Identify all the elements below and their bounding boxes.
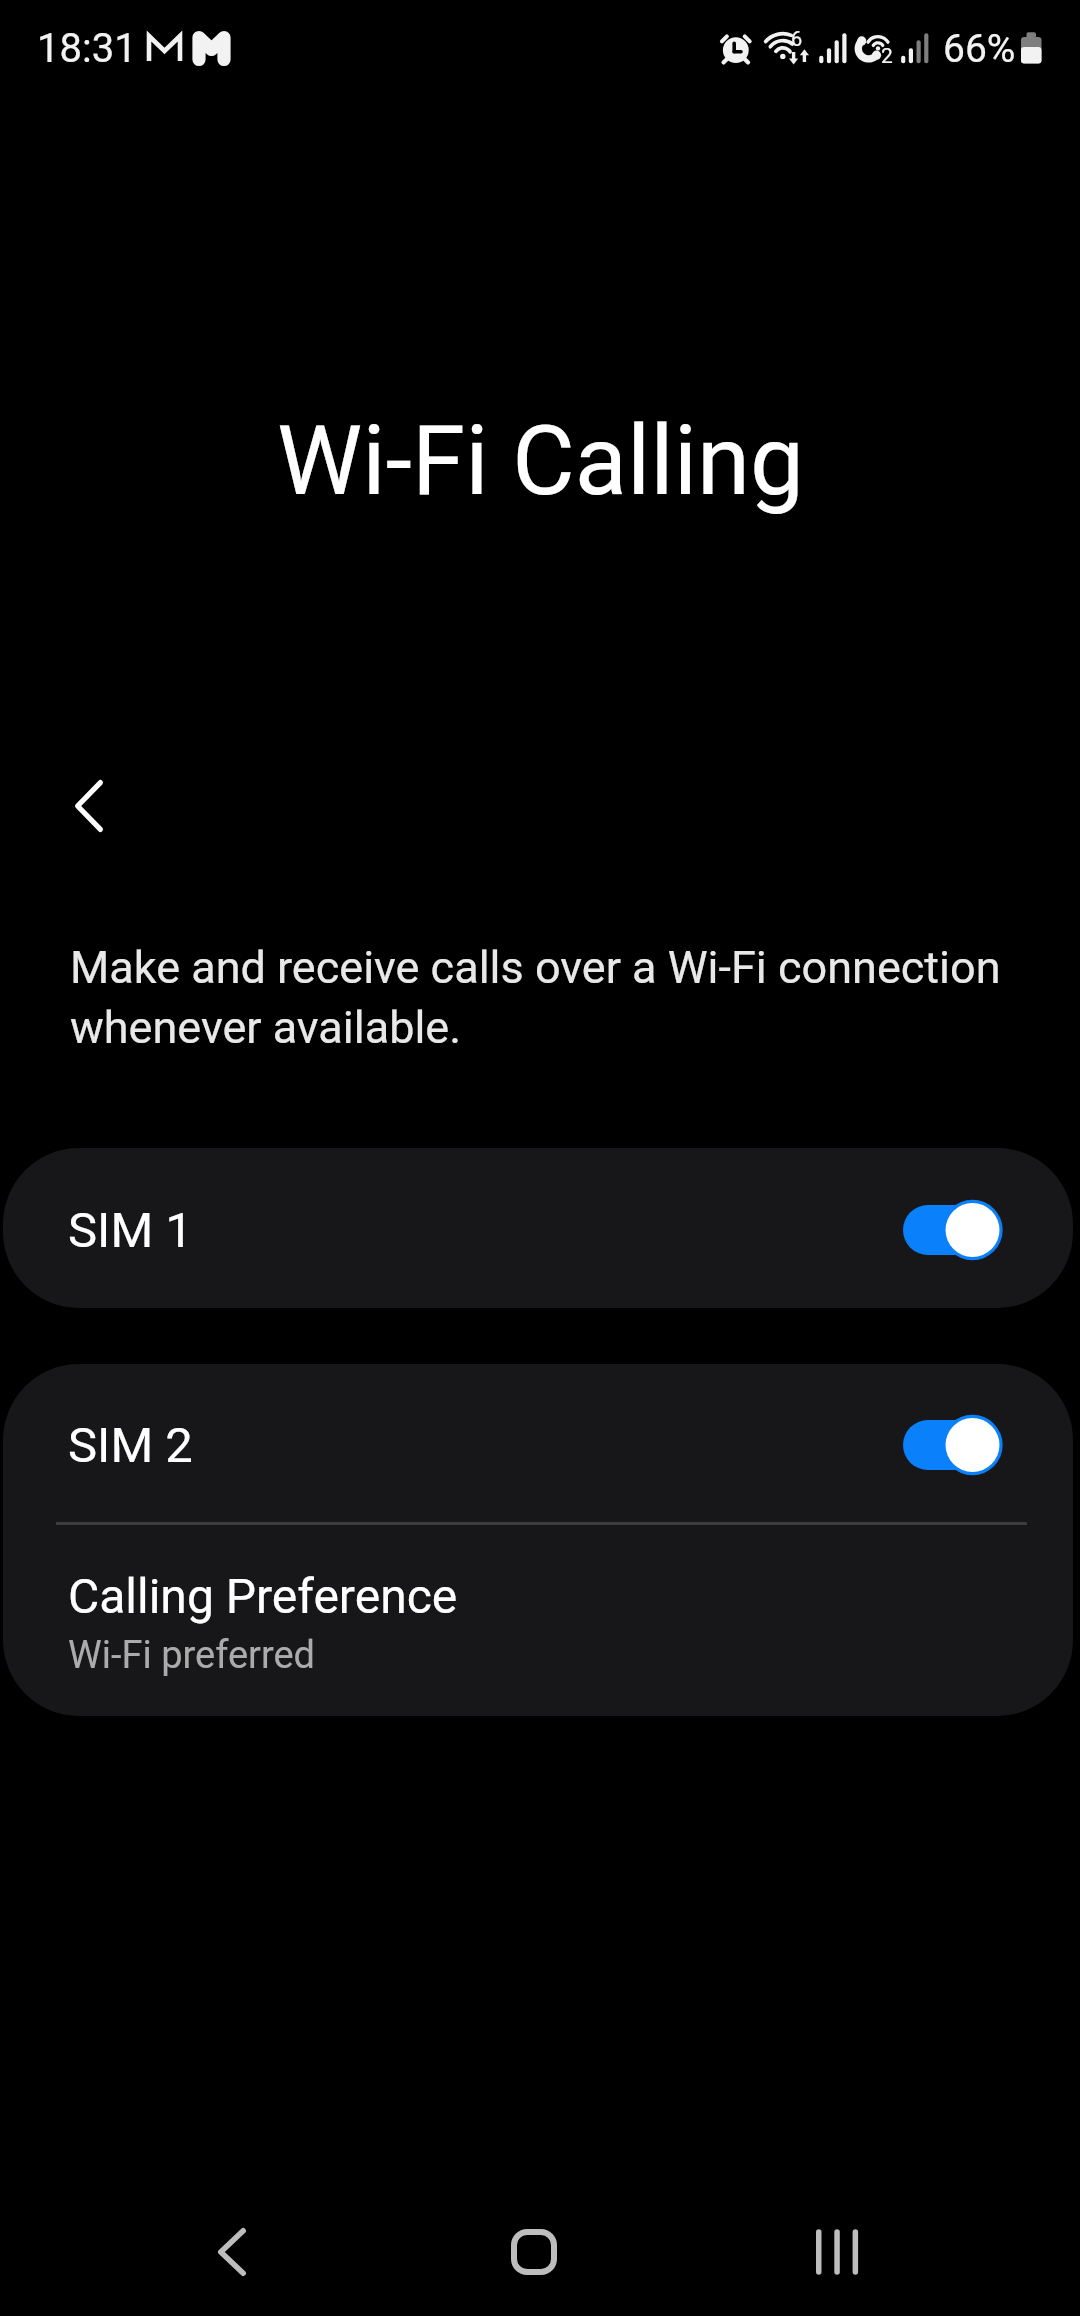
button[interactable]: Home	[474, 2192, 594, 2312]
staticText: SIM 2	[68, 1417, 193, 1474]
button[interactable]: SIM 1	[3, 1148, 1073, 1308]
staticText: Make and receive calls over a Wi-Fi conn…	[70, 941, 1030, 1054]
staticText: SIM 1	[68, 1202, 193, 1259]
staticText: 18:31	[37, 25, 137, 72]
button[interactable]: Navigate up	[29, 746, 149, 866]
button[interactable]: Switch on	[892, 1405, 1002, 1481]
staticText: 6	[791, 27, 803, 50]
button[interactable]: Back	[172, 2192, 292, 2312]
button[interactable]: Switch on	[892, 1190, 1002, 1266]
button[interactable]: Calling Preference	[3, 1525, 1073, 1716]
staticText: Wi-Fi Calling	[277, 405, 804, 518]
staticText: Calling Preference	[68, 1568, 458, 1624]
button[interactable]: SIM 2	[3, 1364, 1073, 1522]
button[interactable]: Recent apps	[777, 2192, 897, 2312]
staticText: 2	[881, 44, 893, 69]
staticText: Wi-Fi preferred	[68, 1633, 316, 1678]
staticText: 66%	[943, 26, 1016, 72]
